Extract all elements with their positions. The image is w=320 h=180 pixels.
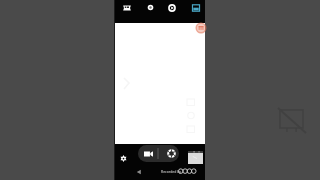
button[interactable]: Open gallery — [188, 151, 203, 164]
button[interactable]: Shutter — [161, 145, 179, 162]
button[interactable]: Record video — [138, 145, 159, 162]
button[interactable]: Back — [134, 167, 143, 176]
button[interactable]: Gallery mode — [186, 0, 206, 15]
button[interactable]: Panorama mode — [117, 0, 137, 15]
button[interactable]: Photo mode — [140, 0, 160, 15]
button[interactable]: Video mode — [162, 0, 182, 15]
button[interactable]: Settings — [118, 153, 129, 164]
staticText: Recorded by — [161, 169, 182, 174]
